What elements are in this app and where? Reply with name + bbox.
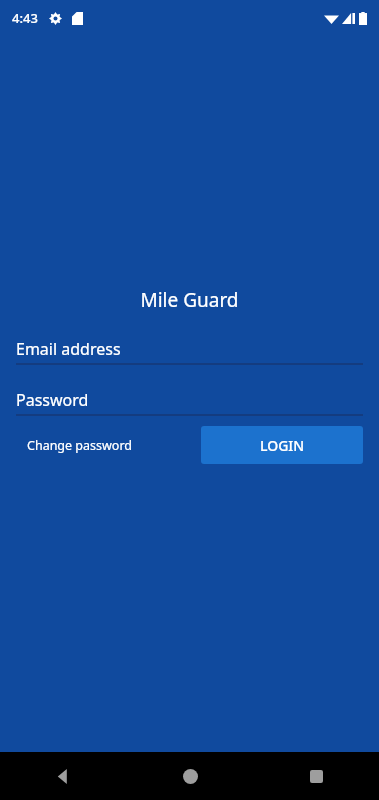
staticText: 4:43 — [12, 9, 38, 27]
staticText: Mile Guard — [0, 287, 379, 313]
staticText: Email address — [16, 338, 121, 360]
staticText: Password — [16, 389, 89, 411]
button[interactable]: Change password — [16, 429, 144, 462]
button[interactable]: LOGIN — [201, 426, 363, 464]
button[interactable]: Home — [127, 752, 253, 800]
button[interactable]: Recents — [253, 752, 379, 800]
button[interactable]: Password — [16, 389, 363, 416]
staticText: Change password — [27, 437, 133, 454]
button[interactable]: Email address — [16, 338, 363, 365]
button[interactable]: Back — [0, 752, 127, 800]
staticText: LOGIN — [260, 436, 305, 455]
